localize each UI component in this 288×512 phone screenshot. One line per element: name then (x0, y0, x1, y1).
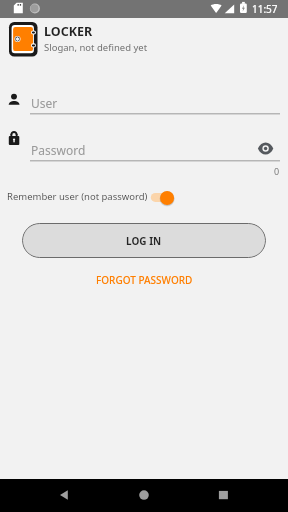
staticText: User (31, 95, 58, 111)
staticText: 11:57 (252, 2, 278, 16)
button[interactable]: LOG IN (22, 223, 266, 258)
button[interactable]: Remember user (150, 188, 178, 208)
button[interactable]: Show password (254, 139, 277, 159)
button[interactable]: Home (120, 479, 168, 512)
staticText: Slogan, not defined yet (44, 41, 148, 54)
staticText: FORGOT PASSWORD (96, 273, 193, 287)
button[interactable]: Recents (200, 479, 248, 512)
staticText: LOCKER (44, 23, 93, 40)
staticText: 0 (274, 165, 280, 177)
staticText: LOG IN (126, 234, 162, 248)
staticText: Remember user (not password) (7, 190, 148, 203)
staticText: Password (31, 142, 86, 158)
button[interactable]: Back (40, 479, 88, 512)
button[interactable]: FORGOT PASSWORD (88, 270, 201, 290)
